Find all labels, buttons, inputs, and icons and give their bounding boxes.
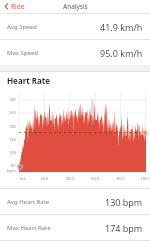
staticText: 41.9 km/h: [100, 21, 143, 33]
button[interactable]: Ride: [3, 1, 26, 12]
staticText: Avg Speed: [7, 23, 37, 31]
staticText: 174 bpm: [105, 222, 143, 234]
staticText: Avg Heart Rate: [7, 198, 50, 206]
staticText: Analysis: [63, 2, 88, 11]
staticText: Heart Rate: [7, 75, 51, 86]
staticText: 95.0 km/h: [100, 47, 143, 59]
staticText: 130 bpm: [105, 196, 143, 208]
staticText: Max Heart Rate: [7, 224, 51, 232]
button[interactable]: Max Heart Rate: [0, 215, 150, 240]
button[interactable]: Max Speed: [0, 40, 150, 65]
button[interactable]: Avg Heart Rate: [0, 189, 150, 214]
button[interactable]: Heart rate chart: [0, 88, 150, 188]
staticText: Max Speed: [7, 49, 38, 57]
button[interactable]: Avg Speed: [0, 14, 150, 39]
staticText: Ride: [11, 2, 25, 11]
